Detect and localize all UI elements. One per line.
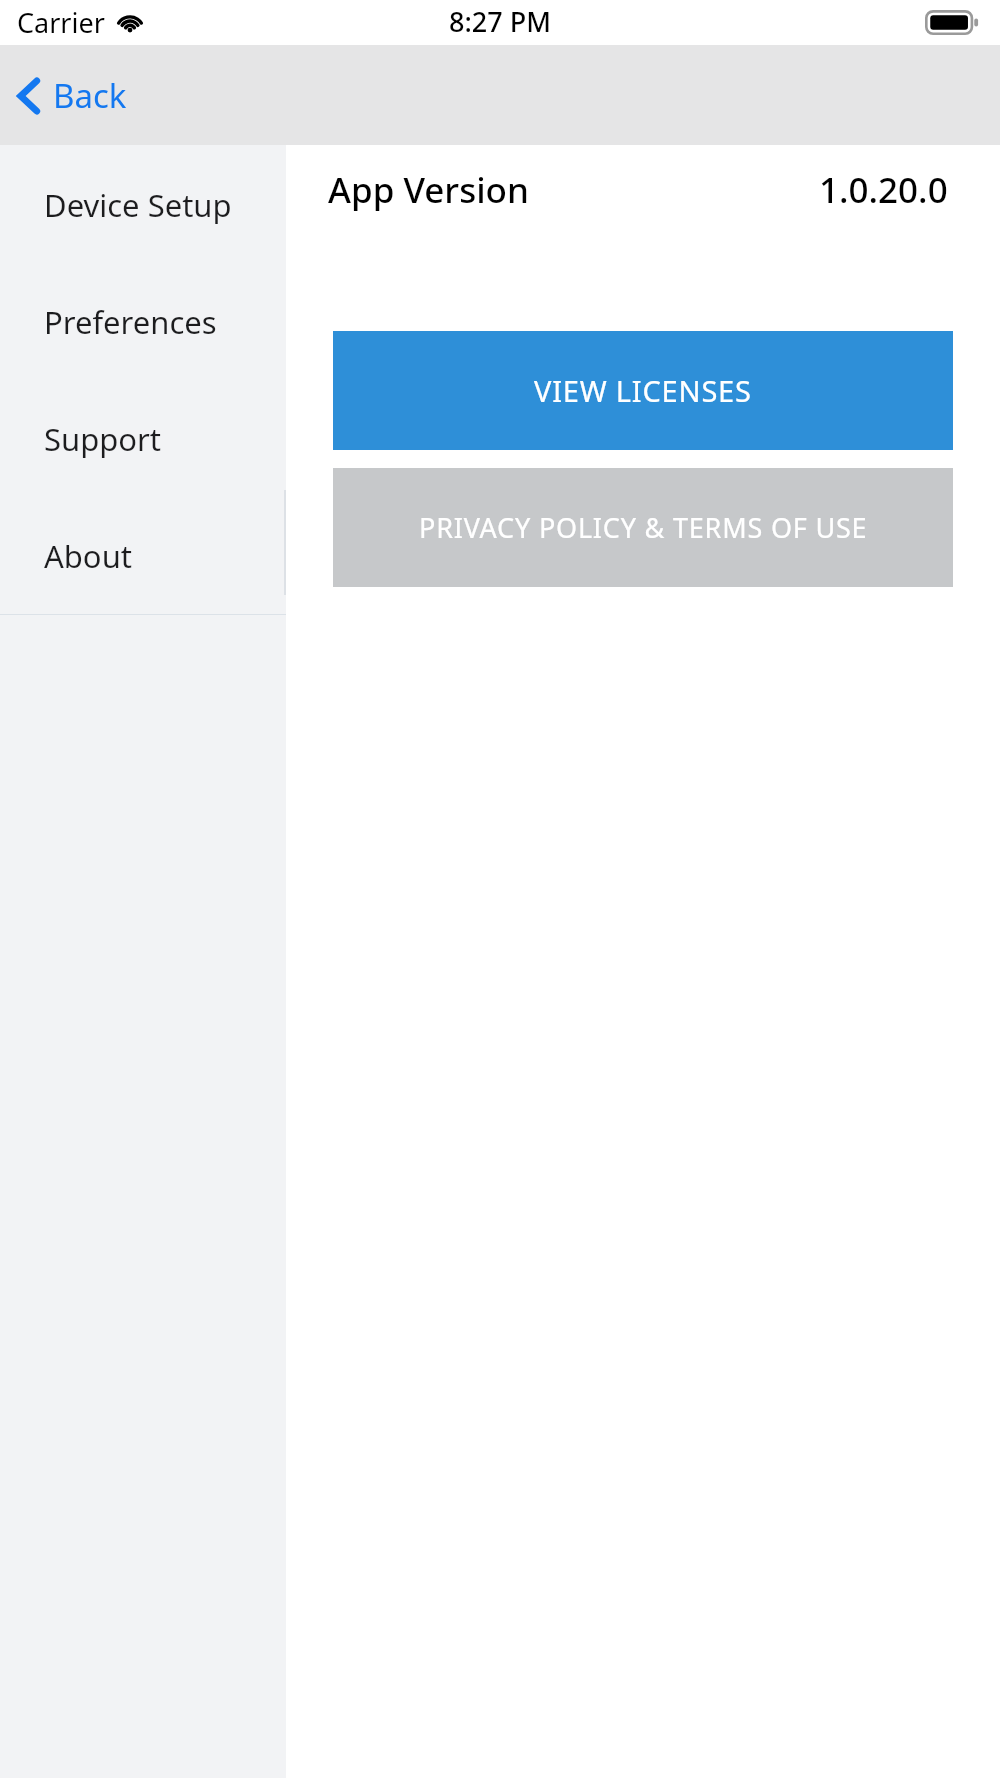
button[interactable]: Device Setup [0,146,286,263]
button[interactable]: VIEW LICENSES [333,331,953,450]
staticText: Carrier [17,4,105,41]
staticText: Preferences [44,301,217,343]
staticText: VIEW LICENSES [534,371,752,410]
button[interactable]: About [0,497,286,614]
staticText: App Version [328,166,529,214]
staticText: Support [44,418,162,460]
staticText: About [44,535,132,577]
button[interactable]: App Version [286,145,1000,235]
staticText: Back [53,73,127,118]
staticText: Device Setup [44,184,232,226]
button[interactable]: Preferences [0,263,286,380]
button[interactable]: Support [0,380,286,497]
staticText: 8:27 PM [449,3,551,40]
staticText: PRIVACY POLICY & TERMS OF USE [419,509,868,546]
staticText: 1.0.20.0 [819,166,948,214]
button[interactable]: Back [16,73,127,118]
button[interactable]: PRIVACY POLICY & TERMS OF USE [333,468,953,587]
